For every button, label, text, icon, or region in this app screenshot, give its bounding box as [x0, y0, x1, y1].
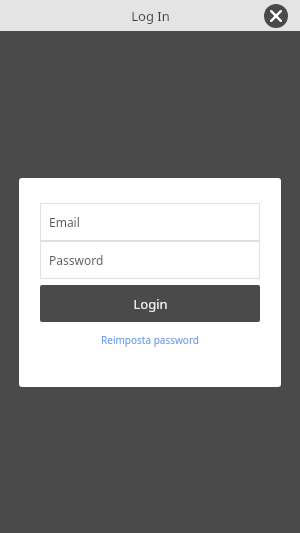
button[interactable]: Password: [40, 241, 260, 279]
staticText: Email: [49, 214, 80, 230]
button[interactable]: Reimposta password: [40, 331, 260, 349]
staticText: Password: [49, 252, 104, 268]
button[interactable]: Login: [40, 285, 260, 322]
staticText: Log In: [131, 7, 170, 25]
staticText: Login: [133, 295, 168, 313]
button[interactable]: Email: [40, 203, 260, 241]
button[interactable]: Close: [264, 4, 288, 28]
staticText: Reimposta password: [101, 333, 199, 347]
